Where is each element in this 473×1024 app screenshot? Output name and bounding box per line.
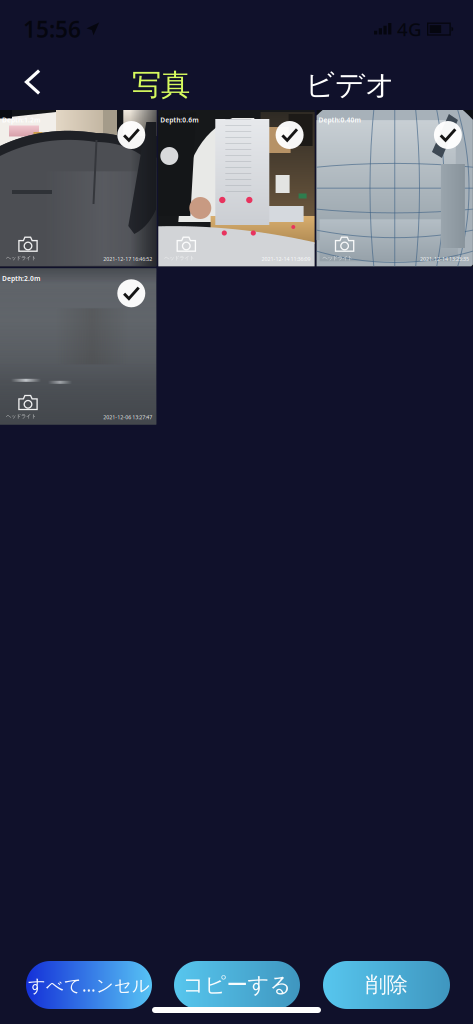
button[interactable]: Photo 2021-12-14 11:36:09 [158, 110, 315, 266]
staticText: Depth:1.2m [2, 115, 41, 125]
staticText: ヘッドライト [6, 413, 36, 420]
staticText: Depth:2.0m [2, 274, 41, 283]
staticText: 写真 [132, 67, 190, 103]
button[interactable]: Photo 2021-12-06 13:27:47 [0, 268, 156, 425]
staticText: Depth:0.6m [160, 115, 199, 125]
staticText: Depth:0.40m [319, 115, 362, 125]
staticText: 15:56 [23, 14, 81, 44]
staticText: 2021-12-14 11:36:09 [262, 255, 311, 263]
staticText: ヘッドライト [164, 255, 194, 261]
staticText: 削除 [365, 972, 407, 998]
button[interactable]: Back [11, 60, 55, 104]
staticText: すべて…ンセル [28, 973, 150, 996]
button[interactable]: 削除 [323, 961, 450, 1009]
button[interactable]: コピーする [174, 961, 300, 1009]
staticText: 2021-12-17 16:46:52 [103, 255, 152, 263]
button[interactable]: すべて…ンセル [26, 961, 152, 1009]
staticText: ヘッドライト [323, 255, 353, 261]
staticText: 4G [397, 17, 422, 41]
button[interactable]: Photo 2021-12-14 13:25:35 [317, 110, 473, 266]
staticText: 2021-12-14 13:25:35 [420, 255, 469, 263]
staticText: ヘッドライト [6, 255, 36, 261]
staticText: 2021-12-06 13:27:47 [103, 414, 152, 421]
staticText: ビデオ [305, 67, 395, 103]
button[interactable]: Photo 2021-12-17 16:46:52 [0, 110, 156, 266]
button[interactable]: ビデオ [290, 63, 410, 107]
button[interactable]: 写真 [106, 63, 216, 107]
staticText: コピーする [182, 972, 291, 998]
